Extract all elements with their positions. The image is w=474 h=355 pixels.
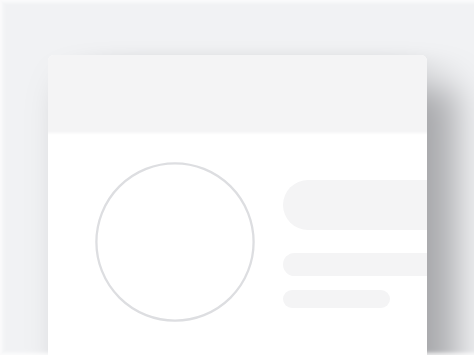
other: Avatar placeholder (92, 159, 258, 325)
button[interactable]: Avatar placeholder (48, 135, 427, 355)
